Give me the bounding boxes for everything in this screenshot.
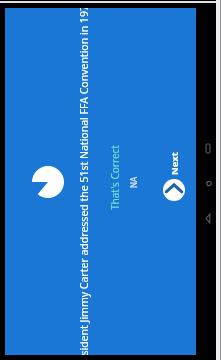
- button[interactable]: Next: [163, 152, 185, 201]
- staticText: That's Correct: [108, 145, 122, 210]
- button[interactable]: Back: [199, 209, 217, 227]
- staticText: President Jimmy Carter addressed the 51s…: [77, 8, 91, 355]
- button[interactable]: Time remaining: [32, 166, 64, 198]
- button[interactable]: Recent apps: [199, 139, 217, 157]
- staticText: NA: [128, 176, 139, 188]
- staticText: Next: [168, 152, 181, 175]
- button[interactable]: Home: [200, 174, 218, 192]
- button[interactable]: That's Correct: [108, 145, 122, 210]
